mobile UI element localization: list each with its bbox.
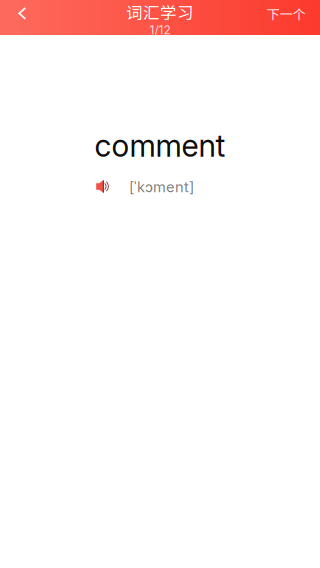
button[interactable]: Play pronunciation bbox=[96, 178, 194, 196]
staticText: comment bbox=[94, 127, 225, 164]
staticText: 词汇学习 bbox=[126, 0, 194, 24]
button[interactable]: Back bbox=[0, 0, 44, 27]
button[interactable]: 下一个 bbox=[260, 0, 312, 27]
staticText: 1/12 bbox=[149, 23, 170, 37]
staticText: 下一个 bbox=[266, 4, 305, 23]
staticText: [ˈkɔment] bbox=[129, 178, 194, 196]
